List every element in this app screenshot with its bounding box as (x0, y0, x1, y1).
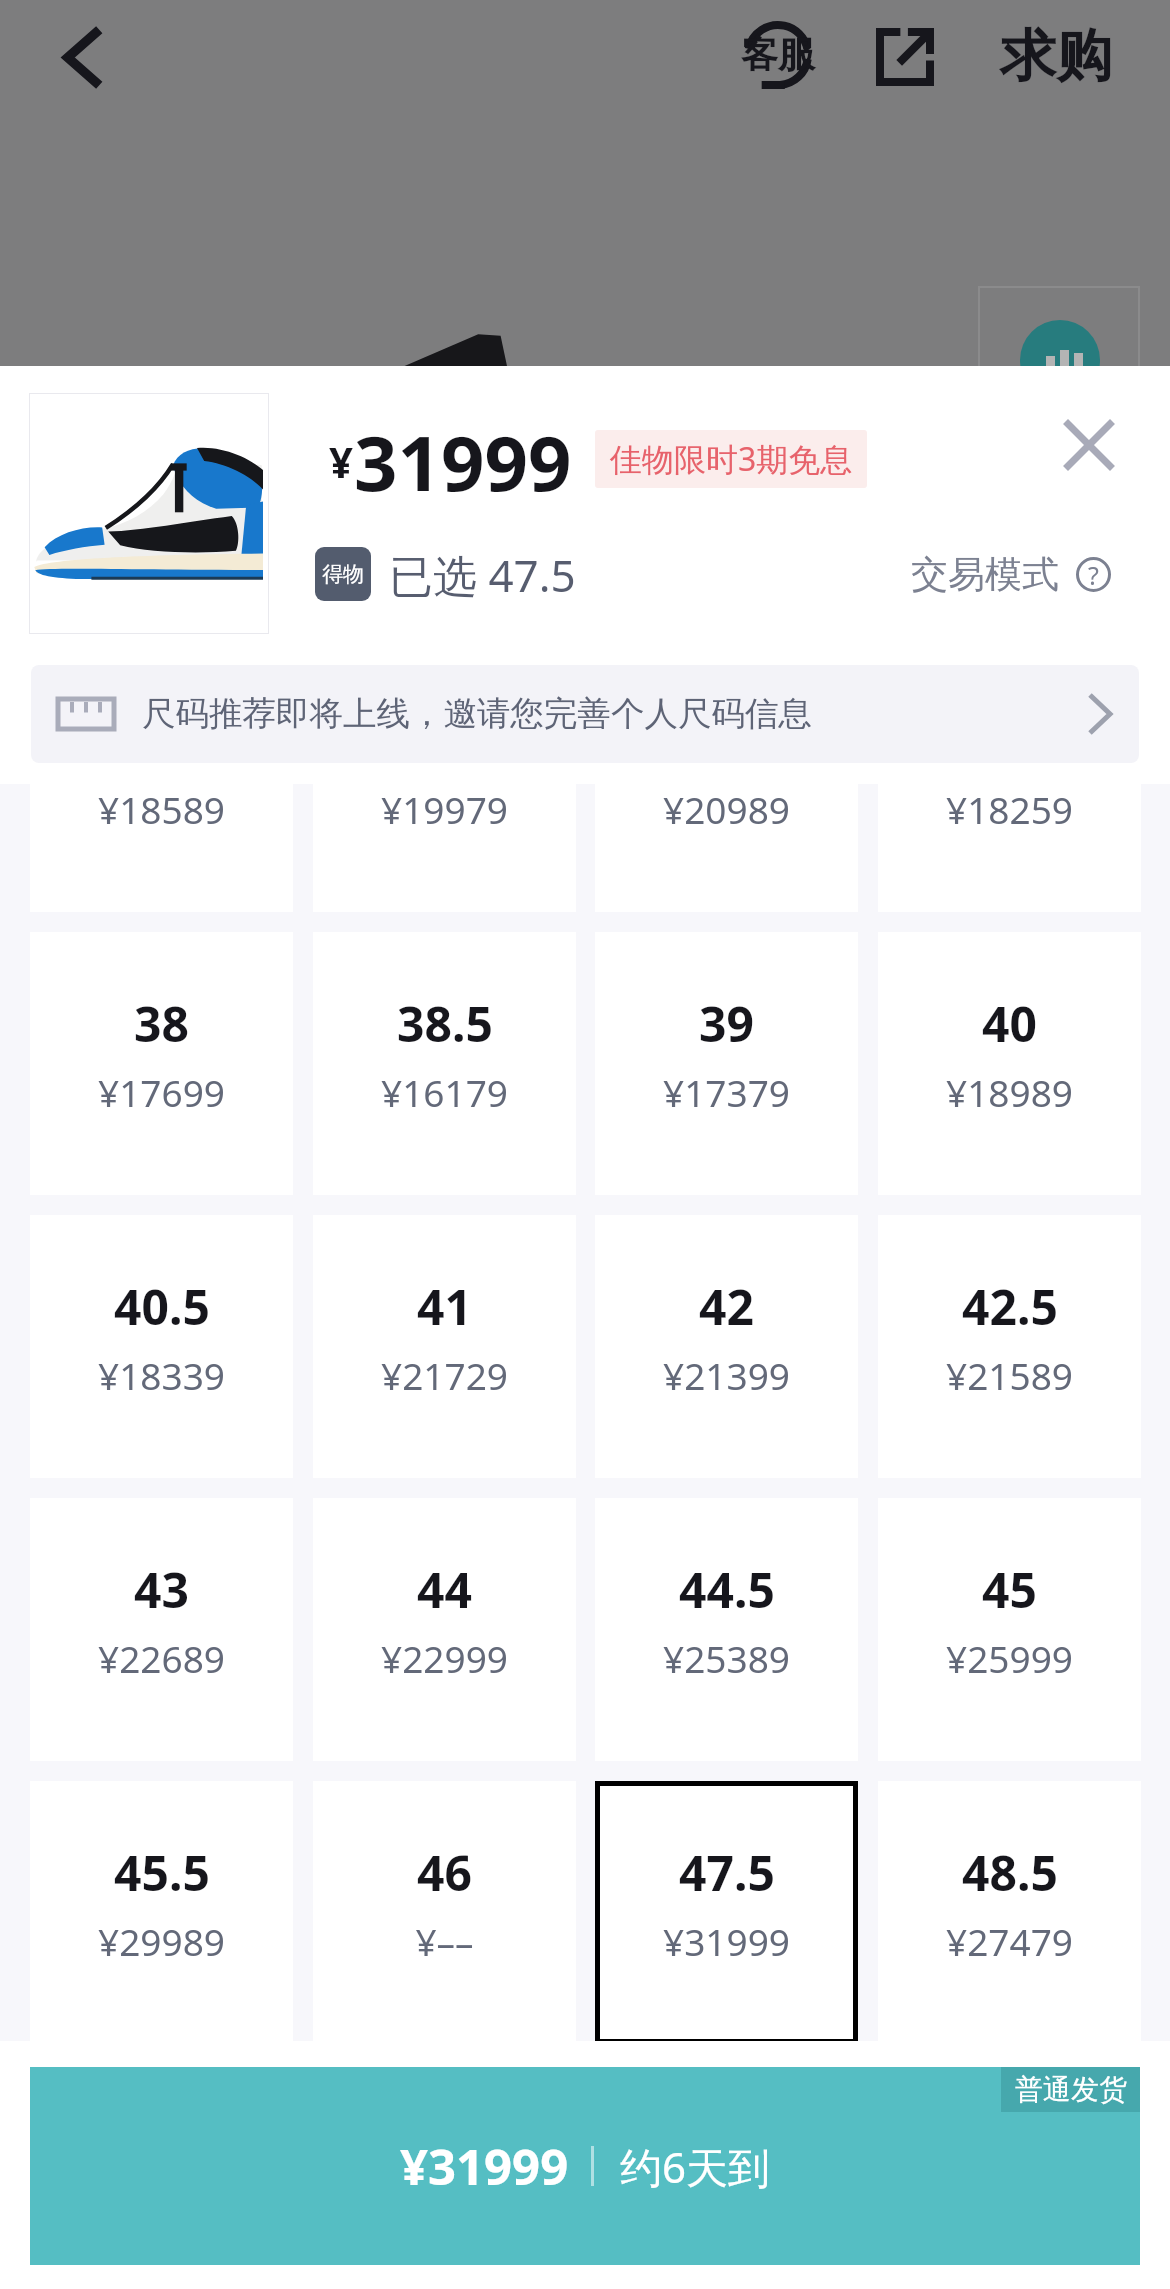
staticText: 尺码推荐即将上线，邀请您完善个人尺码信息 (142, 693, 812, 735)
staticText: ¥29989 (98, 1916, 225, 1966)
staticText: 40.5 (114, 1274, 210, 1339)
staticText: 交易模式 (911, 551, 1059, 598)
button[interactable]: 佳物限时3期免息 (595, 430, 867, 488)
button[interactable]: ¥31999 (30, 2067, 1140, 2265)
staticText: ¥20989 (663, 784, 790, 834)
staticText: ¥21399 (663, 1350, 790, 1400)
staticText: ¥17699 (98, 1067, 225, 1117)
button[interactable]: 44.5 (595, 1498, 858, 1761)
staticText: 45 (982, 1557, 1037, 1622)
staticText: 45.5 (114, 1840, 210, 1905)
staticText: 普通发货 (1015, 2072, 1127, 2107)
staticText: 44 (417, 1557, 472, 1622)
button[interactable]: 45 (878, 1498, 1141, 1761)
staticText: 48.5 (962, 1840, 1058, 1905)
staticText: 31999 (354, 410, 572, 500)
button[interactable]: 36.5 (313, 784, 576, 912)
staticText: ¥22689 (98, 1633, 225, 1683)
button[interactable]: 42 (595, 1215, 858, 1478)
staticText: ¥16179 (381, 1067, 508, 1117)
staticText: 42 (699, 1274, 754, 1339)
staticText: 已选 47.5 (389, 545, 576, 603)
staticText: ¥18989 (946, 1067, 1073, 1117)
button[interactable]: 38.5 (313, 932, 576, 1195)
button[interactable]: 37 (595, 784, 858, 912)
staticText: ¥21729 (381, 1350, 508, 1400)
staticText: 41 (417, 1274, 472, 1339)
staticText: 46 (417, 1840, 472, 1905)
staticText: ¥25389 (663, 1633, 790, 1683)
staticText: 约6天到 (620, 2138, 771, 2195)
staticText: ¥31999 (400, 2133, 569, 2200)
button[interactable]: Product image (29, 393, 269, 634)
button[interactable]: 36 (30, 784, 293, 912)
button[interactable]: 48.5 (878, 1781, 1141, 2041)
staticText: ¥ (329, 433, 354, 490)
button[interactable]: 41 (313, 1215, 576, 1478)
button[interactable]: Close (1045, 401, 1133, 489)
staticText: 38.5 (397, 991, 493, 1056)
button[interactable]: 37.5 (878, 784, 1141, 912)
button[interactable]: 46 (313, 1781, 576, 2041)
staticText: ¥17379 (663, 1067, 790, 1117)
button[interactable]: 42.5 (878, 1215, 1141, 1478)
staticText: ¥27479 (946, 1916, 1073, 1966)
staticText: ¥19979 (381, 784, 508, 834)
staticText: ¥–– (415, 1916, 474, 1966)
staticText: ¥31999 (663, 1916, 790, 1966)
button[interactable]: Back (38, 12, 128, 102)
staticText: 佳物限时3期免息 (610, 437, 853, 481)
button[interactable]: 44 (313, 1498, 576, 1761)
staticText: 42.5 (962, 1274, 1058, 1339)
staticText: ¥18589 (98, 784, 225, 834)
button[interactable]: 交易模式 (911, 545, 1111, 603)
staticText: 40 (982, 991, 1037, 1056)
button[interactable]: 求购 (988, 4, 1123, 108)
button[interactable]: 39 (595, 932, 858, 1195)
staticText: 43 (134, 1557, 189, 1622)
button[interactable]: 得物 (315, 545, 576, 603)
button[interactable]: 43 (30, 1498, 293, 1761)
staticText: ¥18259 (946, 784, 1073, 834)
button[interactable]: 47.5 (595, 1781, 858, 2041)
staticText: 38 (134, 991, 189, 1056)
staticText: 39 (699, 991, 754, 1056)
staticText: ¥22999 (381, 1633, 508, 1683)
staticText: ¥18339 (98, 1350, 225, 1400)
staticText: ? (1088, 558, 1099, 592)
staticText: 47.5 (679, 1840, 775, 1905)
button[interactable]: 45.5 (30, 1781, 293, 2041)
staticText: ¥25999 (946, 1633, 1073, 1683)
button[interactable]: 40 (878, 932, 1141, 1195)
button[interactable]: Share (861, 13, 949, 101)
button[interactable]: 40.5 (30, 1215, 293, 1478)
staticText: 44.5 (679, 1557, 775, 1622)
staticText: 求购 (1000, 21, 1112, 92)
button[interactable]: Customer service (733, 10, 823, 100)
button[interactable]: 尺码推荐即将上线，邀请您完善个人尺码信息 (31, 665, 1139, 763)
staticText: 得物 (322, 561, 364, 587)
button[interactable]: 38 (30, 932, 293, 1195)
staticText: 客服 (741, 31, 815, 78)
staticText: ¥21589 (946, 1350, 1073, 1400)
